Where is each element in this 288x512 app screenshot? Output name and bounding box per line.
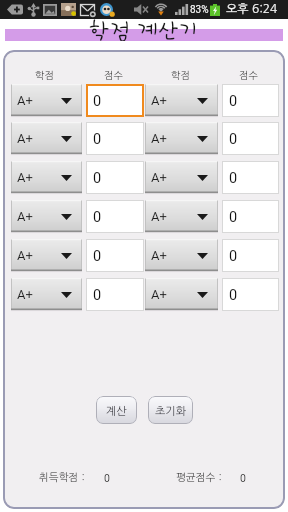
staticText: 0 (229, 131, 238, 148)
button[interactable]: Select grade (145, 122, 218, 155)
staticText: A+ (151, 131, 167, 146)
button[interactable]: Select grade (11, 200, 82, 233)
button[interactable]: Score input (86, 122, 144, 155)
button[interactable]: Score input (86, 278, 144, 311)
button[interactable]: Select grade (11, 161, 82, 194)
staticText: 0 (93, 93, 102, 110)
staticText: 취득학점 : (39, 472, 85, 482)
button[interactable]: Score input (86, 239, 144, 272)
button[interactable]: Score input (86, 84, 144, 117)
staticText: 0 (240, 472, 246, 484)
staticText: 오후 6:24 (226, 3, 278, 15)
button[interactable]: Select grade (11, 122, 82, 155)
staticText: 0 (93, 287, 102, 304)
staticText: A+ (151, 170, 167, 185)
staticText: A+ (17, 131, 33, 146)
staticText: A+ (17, 93, 33, 108)
button[interactable]: Select grade (11, 278, 82, 311)
staticText: 0 (229, 170, 238, 187)
staticText: A+ (151, 248, 167, 263)
button[interactable]: Select grade (145, 200, 218, 233)
button[interactable]: Score input (86, 200, 144, 233)
staticText: A+ (17, 287, 33, 302)
staticText: A+ (151, 93, 167, 108)
staticText: 평균점수 : (176, 472, 222, 482)
button[interactable]: Select grade (145, 278, 218, 311)
staticText: 0 (229, 248, 238, 265)
button[interactable]: Select grade (145, 84, 218, 117)
staticText: 학점 계산기 (88, 19, 200, 41)
staticText: A+ (151, 287, 167, 302)
staticText: A+ (17, 248, 33, 263)
button[interactable]: Select grade (11, 239, 82, 272)
staticText: 0 (229, 93, 238, 110)
staticText: 초기화 (155, 406, 187, 417)
staticText: A+ (17, 170, 33, 185)
staticText: 0 (93, 170, 102, 187)
button[interactable]: 초기화 (148, 396, 193, 424)
button[interactable]: Score input (222, 278, 279, 311)
button[interactable]: Score input (86, 161, 144, 194)
button[interactable]: Score input (222, 84, 279, 117)
button[interactable]: Score input (222, 200, 279, 233)
staticText: 0 (93, 248, 102, 265)
button[interactable]: Score input (222, 122, 279, 155)
button[interactable]: Select grade (11, 84, 82, 117)
staticText: 0 (229, 287, 238, 304)
staticText: 0 (93, 209, 102, 226)
staticText: A+ (17, 209, 33, 224)
button[interactable]: Score input (222, 161, 279, 194)
staticText: 0 (104, 472, 110, 484)
button[interactable]: Select grade (145, 239, 218, 272)
button[interactable]: Select grade (145, 161, 218, 194)
staticText: 83% (190, 4, 209, 16)
button[interactable]: Score input (222, 239, 279, 272)
staticText: 0 (229, 209, 238, 226)
staticText: 0 (93, 131, 102, 148)
staticText: 학점 (171, 70, 190, 80)
button[interactable]: 계산 (96, 396, 137, 424)
staticText: 계산 (106, 406, 127, 417)
staticText: A+ (151, 209, 167, 224)
staticText: 점수 (104, 70, 123, 80)
staticText: 학점 (35, 70, 54, 80)
staticText: 점수 (239, 70, 258, 80)
